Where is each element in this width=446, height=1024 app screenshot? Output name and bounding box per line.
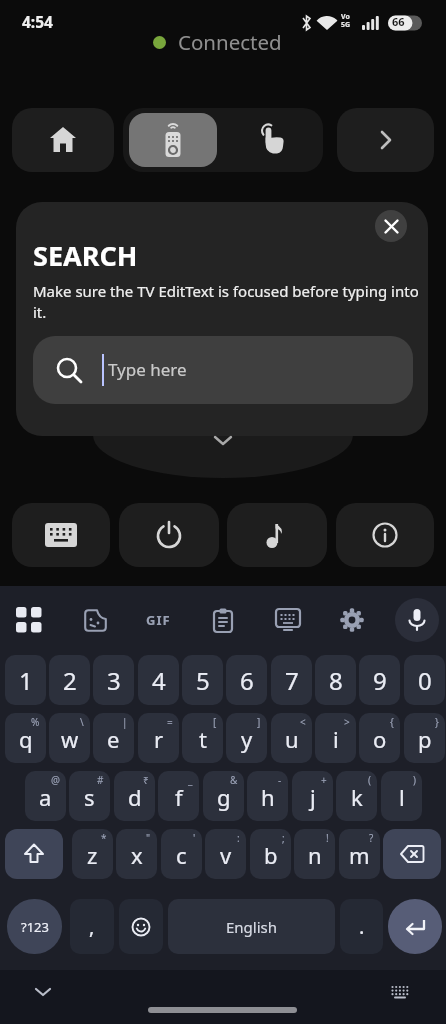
staticText: ₹ [143, 773, 149, 787]
button[interactable] [223, 108, 323, 172]
button[interactable]: g [203, 771, 244, 821]
button[interactable]: e [93, 713, 134, 763]
staticText: 6 [240, 664, 254, 697]
staticText: Make sure the TV EditText is focused bef… [33, 281, 419, 323]
button[interactable] [148, 1007, 297, 1013]
staticText: @ [51, 773, 60, 787]
button[interactable]: z [72, 829, 113, 879]
staticText: g [217, 782, 231, 812]
button[interactable]: t [182, 713, 223, 763]
button[interactable]: c [161, 829, 202, 879]
button[interactable]: , [70, 899, 114, 954]
button[interactable]: 2 [49, 655, 90, 705]
button[interactable]: w [49, 713, 90, 763]
button[interactable]: Type here [33, 336, 413, 404]
staticText: e [107, 724, 120, 754]
button[interactable]: d [114, 771, 155, 821]
staticText: % [31, 715, 40, 729]
button[interactable] [7, 598, 51, 642]
staticText: ?123 [21, 918, 49, 936]
button[interactable] [382, 975, 418, 1009]
button[interactable]: m [339, 829, 380, 879]
button[interactable] [395, 598, 439, 642]
staticText: , [89, 913, 95, 940]
button[interactable]: u [271, 713, 312, 763]
button[interactable] [5, 829, 63, 879]
staticText: - [278, 773, 282, 787]
button[interactable]: y [226, 713, 267, 763]
button[interactable] [73, 598, 117, 642]
button[interactable]: 6 [226, 655, 267, 705]
staticText: u [285, 724, 299, 754]
staticText: ] [257, 715, 261, 729]
button[interactable]: 4 [138, 655, 179, 705]
staticText: j [310, 782, 316, 812]
button[interactable] [119, 899, 163, 954]
staticText: 7 [285, 664, 299, 697]
button[interactable]: q [5, 713, 46, 763]
button[interactable]: r [138, 713, 179, 763]
button[interactable]: 9 [359, 655, 400, 705]
button[interactable]: p [404, 713, 445, 763]
staticText: f [175, 782, 183, 812]
button[interactable]: v [205, 829, 246, 879]
staticText: m [349, 840, 370, 870]
button[interactable]: o [359, 713, 400, 763]
button[interactable]: h [247, 771, 288, 821]
button[interactable]: ?123 [7, 899, 62, 954]
button[interactable]: n [294, 829, 335, 879]
button[interactable] [337, 108, 434, 172]
staticText: GIF [146, 611, 171, 629]
staticText: 66 [392, 14, 405, 29]
button[interactable]: f [158, 771, 199, 821]
button[interactable] [12, 503, 110, 567]
button[interactable]: . [340, 899, 383, 954]
button[interactable]: b [250, 829, 291, 879]
staticText: & [230, 773, 238, 787]
staticText: 2 [63, 664, 77, 697]
button[interactable]: l [381, 771, 422, 821]
button[interactable] [227, 503, 327, 567]
button[interactable]: x [116, 829, 157, 879]
button[interactable]: 1 [5, 655, 46, 705]
button[interactable]: j [292, 771, 333, 821]
button[interactable]: s [69, 771, 110, 821]
staticText: i [333, 724, 339, 754]
button[interactable] [25, 975, 61, 1009]
button[interactable]: GIF [136, 598, 180, 642]
button[interactable] [336, 503, 434, 567]
staticText: { [390, 715, 394, 729]
staticText: w [61, 724, 79, 754]
button[interactable] [330, 598, 374, 642]
button[interactable] [266, 598, 310, 642]
button[interactable] [388, 899, 442, 954]
button[interactable]: 5 [182, 655, 223, 705]
staticText: SEARCH [33, 237, 138, 274]
button[interactable] [375, 210, 407, 242]
button[interactable]: 3 [93, 655, 134, 705]
staticText: y [241, 724, 253, 754]
button[interactable]: 8 [315, 655, 356, 705]
staticText: Vo 5G [341, 12, 351, 29]
staticText: 4:54 [22, 11, 53, 32]
staticText: r [154, 724, 164, 754]
button[interactable]: English [168, 899, 335, 954]
staticText: 5 [196, 664, 210, 697]
button[interactable] [12, 108, 114, 172]
button[interactable] [119, 503, 219, 567]
button[interactable]: k [336, 771, 377, 821]
button[interactable] [129, 113, 217, 167]
button[interactable]: 7 [271, 655, 312, 705]
button[interactable]: i [315, 713, 356, 763]
button[interactable]: 0 [404, 655, 445, 705]
button[interactable]: a [25, 771, 66, 821]
staticText: " [146, 831, 151, 845]
button[interactable] [201, 598, 245, 642]
staticText: s [84, 782, 95, 812]
staticText: } [435, 715, 439, 729]
staticText: + [321, 773, 327, 787]
button[interactable] [383, 829, 441, 879]
staticText: c [176, 840, 187, 870]
staticText: 8 [329, 664, 343, 697]
staticText: n [308, 840, 322, 870]
